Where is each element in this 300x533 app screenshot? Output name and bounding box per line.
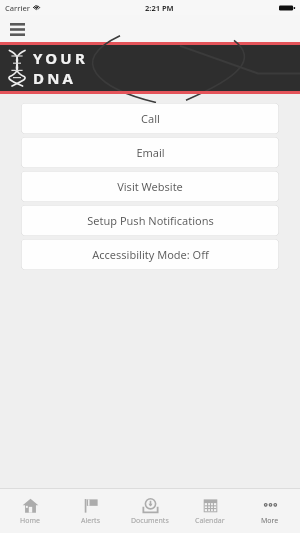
staticText: Setup Push Notifications	[87, 213, 214, 228]
staticText: Documents	[131, 516, 169, 526]
staticText: YOUR	[33, 48, 88, 68]
button[interactable]: More	[240, 489, 300, 533]
button[interactable]: Menu	[6, 18, 28, 40]
button[interactable]: Documents	[120, 489, 180, 533]
button[interactable]: Accessibility Mode: Off	[21, 239, 279, 270]
staticText: Visit Website	[117, 179, 183, 194]
staticText: Call	[141, 111, 160, 126]
button[interactable]: Email	[21, 137, 279, 168]
button[interactable]: Calendar	[180, 489, 240, 533]
button[interactable]: Setup Push Notifications	[21, 205, 279, 236]
staticText: Carrier	[5, 3, 30, 13]
button[interactable]: Call	[21, 103, 279, 134]
staticText: 2:21 PM	[145, 3, 174, 13]
staticText: Alerts	[81, 516, 100, 526]
staticText: More	[261, 516, 279, 526]
button[interactable]: Alerts	[60, 489, 120, 533]
staticText: Home	[20, 516, 40, 526]
staticText: Accessibility Mode: Off	[92, 247, 209, 262]
staticText: Calendar	[195, 516, 225, 526]
button[interactable]: Home	[0, 489, 60, 533]
staticText: Email	[136, 145, 165, 160]
staticText: DNA	[33, 68, 77, 88]
button[interactable]: Visit Website	[21, 171, 279, 202]
